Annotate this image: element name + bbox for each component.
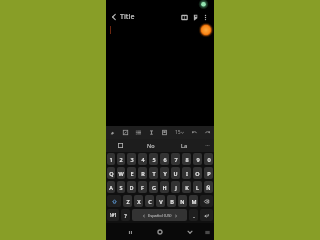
button[interactable]: !#1: [107, 209, 119, 221]
button[interactable]: Font size: [172, 127, 186, 138]
button[interactable]: D: [127, 181, 136, 193]
staticText: V: [159, 198, 163, 205]
staticText: J: [175, 184, 177, 191]
staticText: X: [137, 198, 141, 205]
button[interactable]: More options: [199, 11, 211, 23]
button[interactable]: La: [168, 139, 200, 152]
button[interactable]: Z: [123, 195, 132, 207]
button[interactable]: U: [171, 167, 180, 179]
button[interactable]: N: [178, 195, 187, 207]
staticText: I: [186, 170, 188, 177]
staticText: O: [195, 170, 200, 177]
button[interactable]: Text color: [159, 127, 170, 138]
button[interactable]: X: [134, 195, 143, 207]
staticText: S: [119, 184, 123, 191]
button[interactable]: Clipboard: [106, 139, 134, 152]
button[interactable]: C: [145, 195, 154, 207]
button[interactable]: R: [138, 167, 147, 179]
staticText: .: [193, 212, 195, 219]
button[interactable]: 0: [204, 153, 213, 165]
button[interactable]: 8: [182, 153, 191, 165]
staticText: H: [162, 184, 167, 191]
button[interactable]: Ñ: [204, 181, 213, 193]
button[interactable]: B: [167, 195, 176, 207]
button[interactable]: Q: [107, 167, 115, 179]
staticText: No: [147, 142, 155, 149]
button[interactable]: Space: [132, 209, 187, 221]
staticText: E: [130, 170, 134, 177]
staticText: !#1: [110, 212, 117, 218]
button[interactable]: Backspace: [200, 195, 213, 207]
button[interactable]: W: [117, 167, 125, 179]
staticText: Title: [120, 12, 135, 22]
button[interactable]: Hide keyboard: [184, 226, 196, 238]
button[interactable]: Insert: [120, 127, 131, 138]
staticText: K: [185, 184, 189, 191]
button[interactable]: Text style: [146, 127, 157, 138]
button[interactable]: G: [149, 181, 158, 193]
button[interactable]: More suggestions: [200, 139, 214, 152]
button[interactable]: H: [160, 181, 169, 193]
staticText: 4: [141, 156, 145, 163]
button[interactable]: Pin: [188, 11, 200, 23]
button[interactable]: Home: [154, 226, 166, 238]
staticText: 15: [175, 129, 181, 136]
staticText: 6: [163, 156, 167, 163]
staticText: La: [181, 142, 187, 149]
button[interactable]: Y: [160, 167, 169, 179]
staticText: T: [152, 170, 156, 177]
button[interactable]: 9: [193, 153, 202, 165]
button[interactable]: .: [189, 209, 198, 221]
staticText: 5: [152, 156, 156, 163]
staticText: Español (US): [148, 213, 172, 218]
staticText: Q: [109, 170, 114, 177]
staticText: G: [152, 184, 156, 191]
button[interactable]: Recents: [124, 226, 136, 238]
staticText: D: [129, 184, 134, 191]
staticText: N: [180, 198, 185, 205]
staticText: 2: [119, 156, 123, 163]
button[interactable]: M: [189, 195, 198, 207]
button[interactable]: S: [117, 181, 125, 193]
button[interactable]: V: [156, 195, 165, 207]
button[interactable]: Shift: [107, 195, 121, 207]
staticText: L: [196, 184, 199, 191]
button[interactable]: List: [133, 127, 144, 138]
button[interactable]: 7: [171, 153, 180, 165]
button[interactable]: 1: [107, 153, 115, 165]
button[interactable]: J: [171, 181, 180, 193]
button[interactable]: Highlighter: [107, 127, 118, 138]
staticText: 7: [174, 156, 178, 163]
button[interactable]: Redo: [202, 127, 213, 138]
button[interactable]: O: [193, 167, 202, 179]
button[interactable]: ?: [121, 209, 130, 221]
button[interactable]: Back: [108, 11, 120, 23]
staticText: Ñ: [206, 184, 211, 191]
button[interactable]: I: [182, 167, 191, 179]
button[interactable]: E: [127, 167, 136, 179]
button[interactable]: 4: [138, 153, 147, 165]
button[interactable]: No: [134, 139, 168, 152]
staticText: 1: [109, 156, 113, 163]
button[interactable]: 2: [117, 153, 125, 165]
staticText: 3: [130, 156, 134, 163]
button[interactable]: 5: [149, 153, 158, 165]
button[interactable]: 6: [160, 153, 169, 165]
button[interactable]: Undo: [189, 127, 200, 138]
button[interactable]: A: [107, 181, 115, 193]
button[interactable]: F: [138, 181, 147, 193]
staticText: 8: [185, 156, 189, 163]
button[interactable]: 3: [127, 153, 136, 165]
button[interactable]: Keyboard layout: [201, 226, 213, 238]
button[interactable]: K: [182, 181, 191, 193]
staticText: F: [141, 184, 144, 191]
button[interactable]: Enter: [200, 209, 213, 221]
staticText: 9: [196, 156, 200, 163]
staticText: W: [118, 170, 124, 177]
button[interactable]: L: [193, 181, 202, 193]
staticText: Y: [163, 170, 167, 177]
button[interactable]: T: [149, 167, 158, 179]
button[interactable]: View mode: [178, 11, 190, 23]
staticText: R: [141, 170, 145, 177]
button[interactable]: P: [204, 167, 213, 179]
